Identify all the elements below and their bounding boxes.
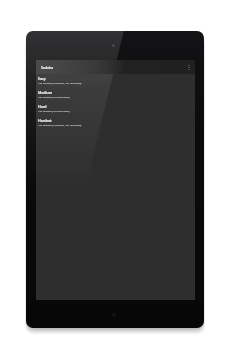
staticText: 100 puzzles (100 unsolved) xyxy=(38,109,70,112)
button[interactable]: Medium xyxy=(36,88,195,102)
staticText: Hard xyxy=(38,104,47,109)
staticText: 100 puzzles (4 playing, 159 unsolved) xyxy=(38,81,82,84)
staticText: Easy xyxy=(38,76,46,81)
button[interactable]: Hard xyxy=(36,102,195,116)
staticText: 100 puzzles (3 playing, 100 unsolved) xyxy=(38,123,82,126)
button[interactable]: Hardest xyxy=(36,116,195,129)
staticText: Sudoku xyxy=(41,65,54,70)
staticText: Medium xyxy=(38,90,53,95)
staticText: Hardest xyxy=(38,118,52,123)
staticText: 100 puzzles (100 unsolved) xyxy=(38,95,70,98)
button[interactable]: Easy xyxy=(36,74,195,88)
button[interactable]: More options xyxy=(183,60,195,74)
